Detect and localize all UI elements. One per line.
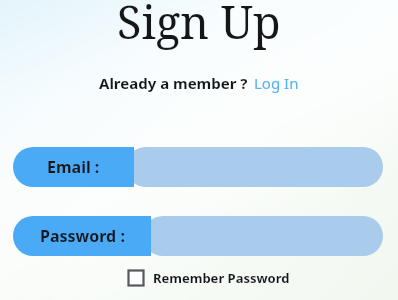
button[interactable]: Email : (13, 147, 383, 187)
staticText: Password : (40, 225, 125, 247)
button[interactable]: Remember Password checkbox (127, 269, 290, 287)
button[interactable]: Log In (253, 73, 300, 93)
staticText: Log In (254, 73, 299, 93)
other: Remember Password checkbox (127, 269, 145, 287)
button[interactable]: Password : (13, 216, 383, 256)
staticText: Remember Password (153, 269, 290, 287)
staticText: Sign Up (117, 0, 281, 52)
staticText: Already a member ? (99, 73, 248, 93)
staticText: Email : (47, 156, 100, 178)
